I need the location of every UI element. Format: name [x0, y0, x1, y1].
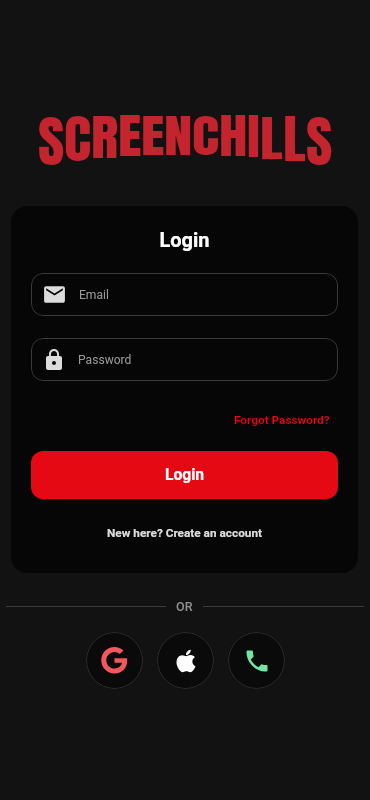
button[interactable]: New here? Create an account	[107, 526, 262, 540]
button[interactable]: Login	[31, 451, 338, 499]
button[interactable]: Email	[31, 273, 338, 316]
staticText: Email	[79, 288, 109, 302]
staticText: Password	[78, 353, 132, 367]
button[interactable]: Forgot Password?	[234, 413, 330, 427]
staticText: Login	[11, 228, 358, 251]
button[interactable]: Sign in with Google	[86, 632, 143, 689]
button[interactable]: Password	[31, 338, 338, 381]
staticText: OR	[176, 599, 193, 614]
button[interactable]: Sign in with Apple	[157, 632, 214, 689]
staticText: Login	[165, 466, 205, 484]
button[interactable]: Sign in with phone number	[228, 632, 285, 689]
